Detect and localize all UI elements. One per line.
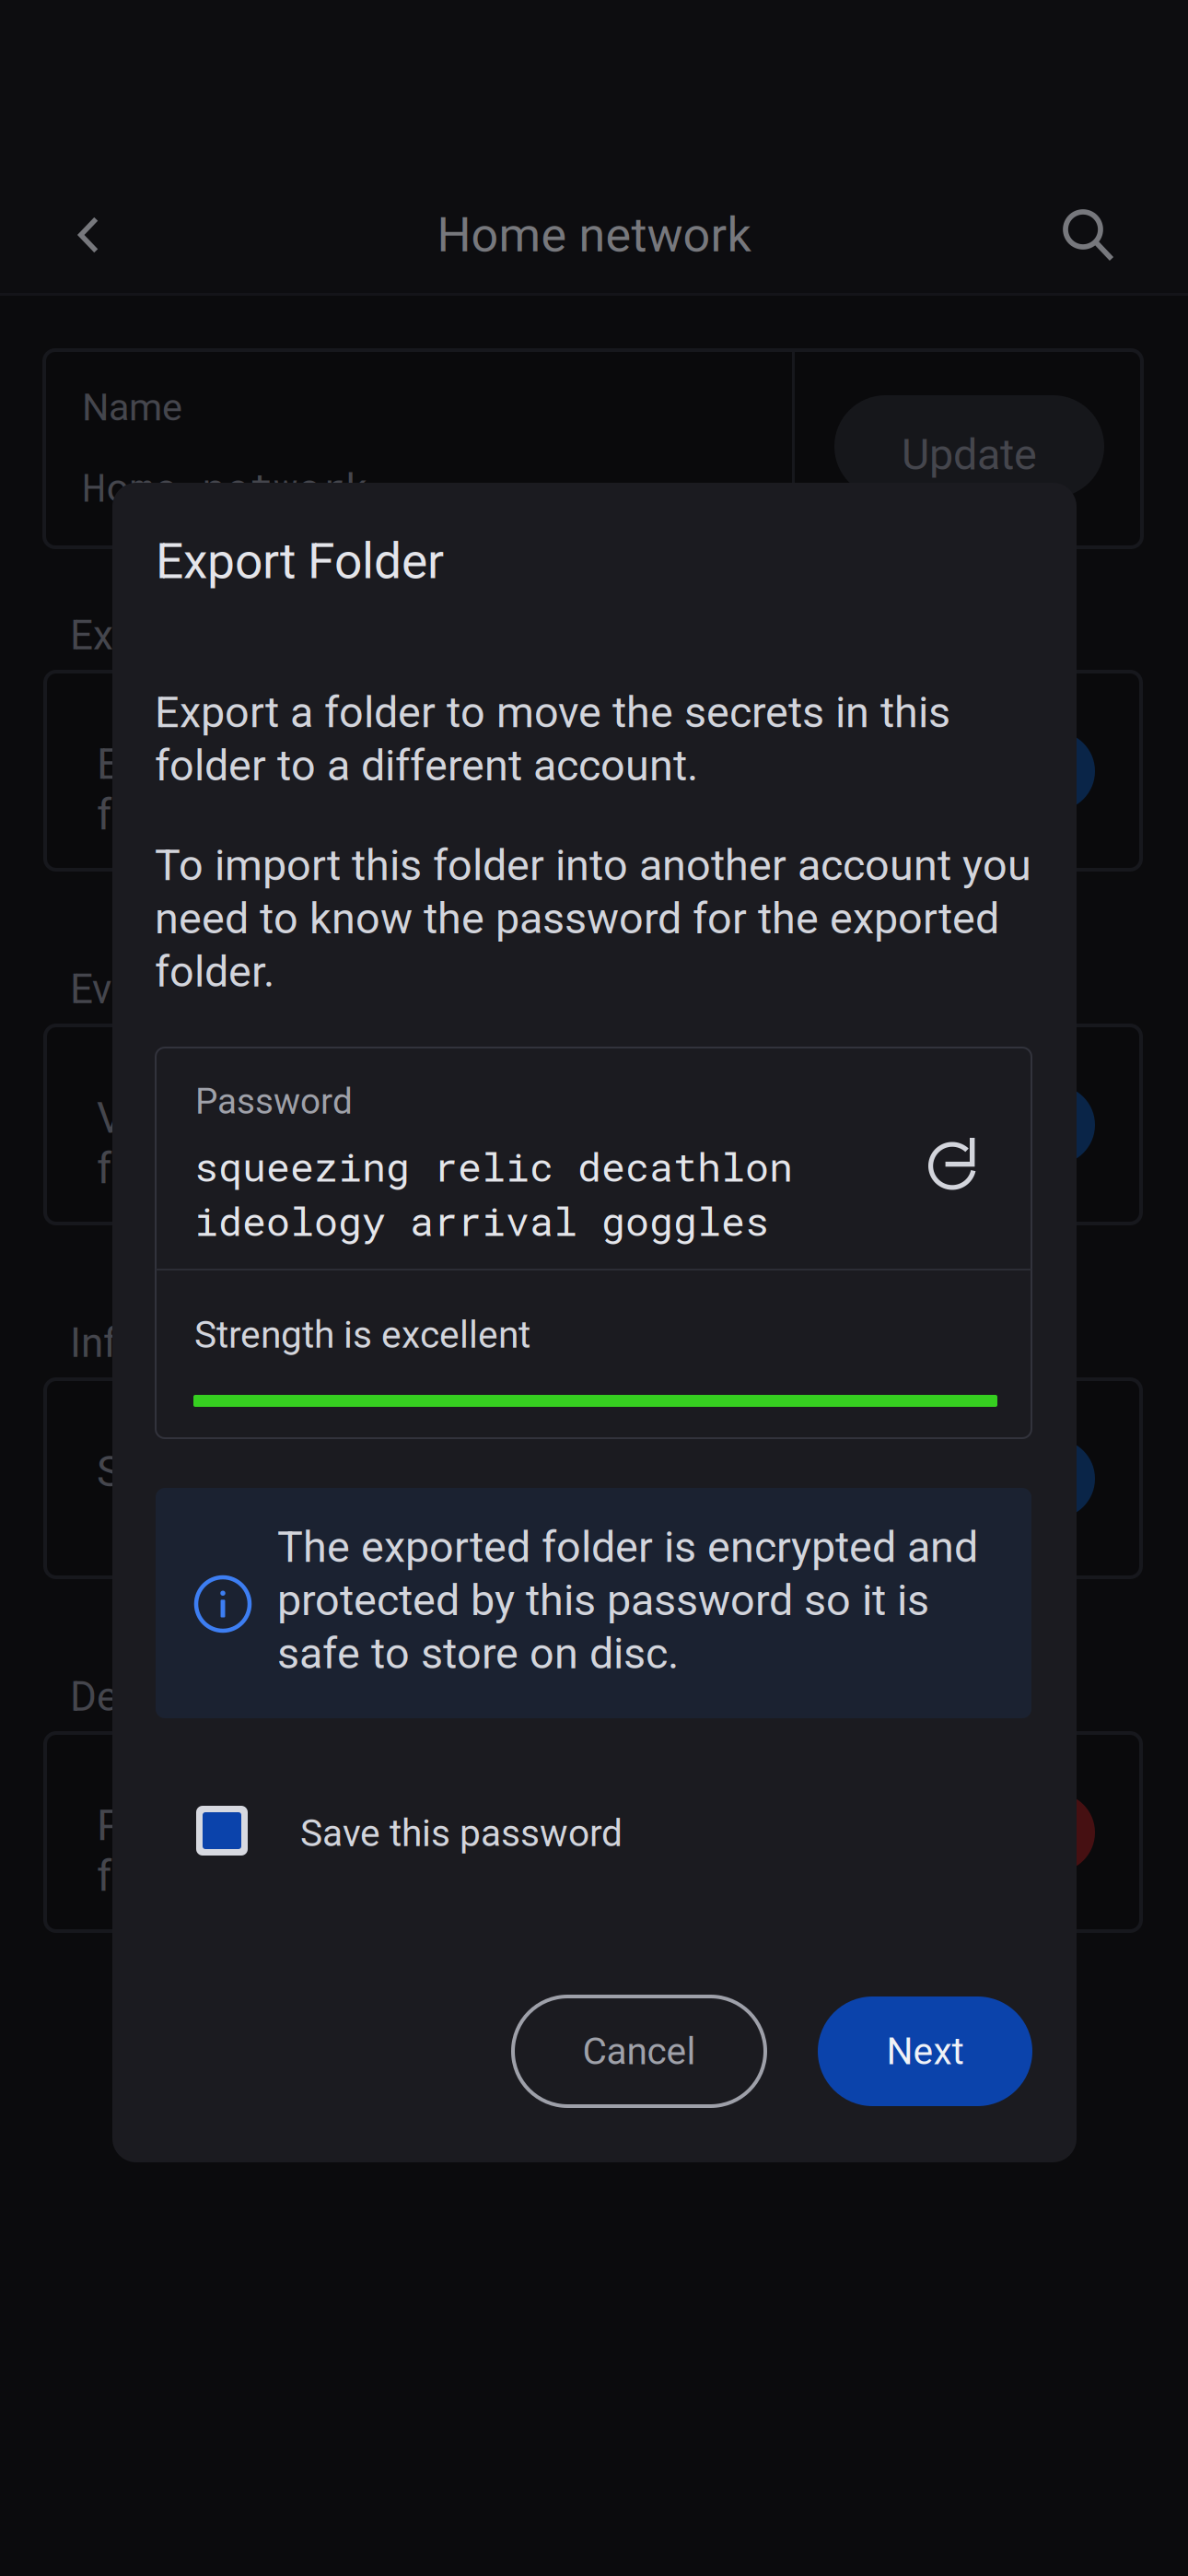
staticText: for folder [97, 1143, 274, 1194]
staticText: Name [82, 385, 182, 430]
staticText: Update [902, 430, 1037, 480]
staticText: folder [97, 1851, 208, 1901]
button[interactable]: Back [41, 187, 136, 283]
staticText: Export [70, 612, 187, 659]
button[interactable]: Next [818, 1996, 1032, 2106]
staticText: Save this password [300, 1811, 623, 1855]
staticText: View events [97, 1093, 326, 1143]
staticText: Export this [97, 739, 302, 789]
staticText: Delete [70, 1673, 183, 1721]
button[interactable]: Generate new password [912, 1119, 1000, 1208]
staticText: Export Folder [156, 533, 444, 590]
staticText: Strength is excellent [194, 1313, 530, 1357]
staticText: Events [70, 966, 189, 1013]
staticText: Export a folder to move the secrets in t… [155, 687, 950, 791]
staticText: Permanently delete [97, 1800, 465, 1851]
staticText: Home network [437, 207, 751, 263]
staticText: folder [97, 790, 208, 840]
staticText: The exported folder is encrypted and pro… [277, 1522, 978, 1679]
staticText: Info [70, 1319, 140, 1367]
staticText: Cancel [582, 2029, 696, 2073]
staticText: Password [195, 1081, 353, 1122]
button[interactable]: Save this password [196, 1794, 767, 1868]
button[interactable]: Search [1042, 189, 1138, 285]
staticText: Home network [82, 460, 369, 512]
staticText: Show folder info [97, 1446, 411, 1497]
staticText: To import this folder into another accou… [155, 840, 1031, 997]
staticText: Next [886, 2029, 964, 2073]
staticText: squeezing relic decathlon ideology arriv… [194, 1140, 793, 1247]
button[interactable]: Cancel [513, 1996, 765, 2106]
